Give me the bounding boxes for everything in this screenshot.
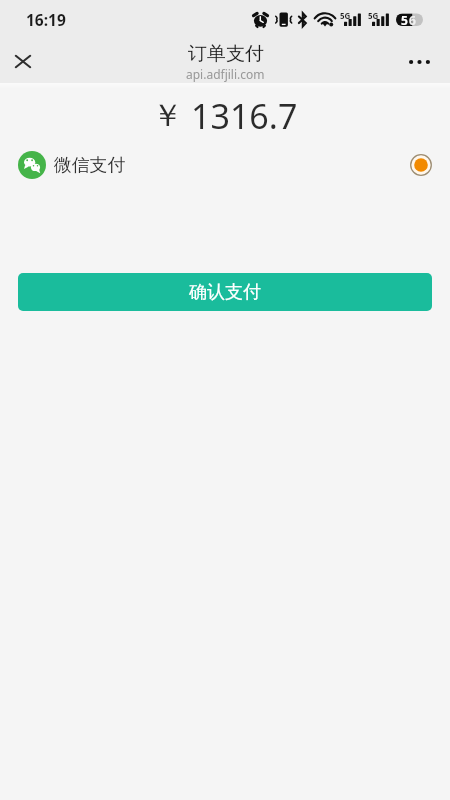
button[interactable]: 微信支付 [0, 145, 450, 185]
staticText: 1316.7 [191, 93, 298, 131]
button[interactable]: Close [0, 38, 46, 83]
staticText: 5G [340, 10, 351, 21]
staticText: ￥ [152, 96, 183, 134]
staticText: api.adfjili.com [186, 66, 265, 82]
staticText: 5G [368, 10, 379, 21]
staticText: 确认支付 [189, 281, 261, 304]
staticText: 5 [401, 12, 408, 28]
staticText: 6 [409, 12, 416, 28]
staticText: 16:19 [26, 9, 66, 30]
staticText: 微信支付 [54, 154, 126, 176]
staticText: 订单支付 [188, 42, 264, 66]
button[interactable]: More options [404, 38, 450, 83]
button[interactable]: 确认支付 [18, 273, 432, 311]
